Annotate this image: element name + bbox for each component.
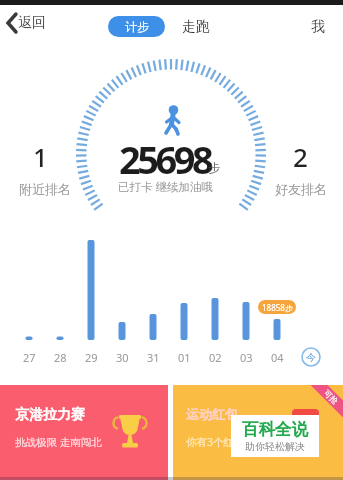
staticText: 18858步 [262, 302, 293, 313]
staticText: 可抢 [322, 388, 340, 406]
staticText: 27 [23, 350, 36, 365]
staticText: 1 [33, 139, 48, 174]
button[interactable]: 运动红包 [173, 385, 343, 480]
staticText: 百科全说 [242, 419, 308, 440]
staticText: 25698 [119, 133, 211, 185]
staticText: 29 [85, 350, 98, 365]
staticText: 返回 [18, 14, 46, 32]
staticText: 01 [178, 350, 191, 365]
staticText: 04 [271, 350, 284, 365]
staticText: 已打卡 继续加油哦 [118, 179, 213, 195]
staticText: 02 [209, 350, 222, 365]
staticText: 好友排名 [275, 181, 327, 197]
button[interactable]: 我 [305, 16, 331, 37]
button[interactable]: 计步 [108, 16, 165, 37]
staticText: 你有3个红包 [186, 435, 245, 449]
staticText: 运动红包 [186, 406, 238, 422]
staticText: 31 [147, 350, 160, 365]
staticText: 附近排名 [19, 181, 71, 197]
button[interactable]: 返回 [6, 13, 46, 33]
staticText: 2 [293, 139, 308, 174]
staticText: 28 [54, 350, 67, 365]
button[interactable]: 京港拉力赛 [0, 385, 168, 480]
staticText: 我 [311, 18, 325, 36]
staticText: 挑战极限 走南闯北 [15, 435, 102, 449]
button[interactable]: 走跑 [176, 16, 216, 37]
staticText: 走跑 [182, 18, 210, 36]
staticText: 03 [240, 350, 253, 365]
staticText: 步 [208, 160, 220, 175]
staticText: 京港拉力赛 [15, 406, 85, 424]
staticText: 助你轻松解决 [245, 440, 305, 453]
staticText: 计步 [125, 19, 149, 34]
staticText: 30 [116, 350, 129, 365]
staticText: 今 [306, 351, 316, 364]
